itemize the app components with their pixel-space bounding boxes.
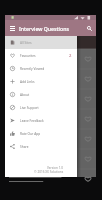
staticText: Leave Feedback (20, 119, 44, 123)
button[interactable]: Search (82, 21, 96, 35)
staticText: About (20, 93, 30, 97)
button[interactable]: Live Support (5, 101, 77, 114)
button[interactable]: All Sites (5, 36, 77, 49)
staticText: Share (20, 145, 29, 149)
button[interactable]: Recently Viewed (5, 62, 77, 75)
staticText: Interview Questions (19, 25, 69, 32)
staticText: Version 1.0 (47, 166, 64, 170)
staticText: Live Support (20, 106, 39, 110)
staticText: 2 (69, 53, 72, 59)
staticText: Rate Our App (20, 132, 41, 136)
staticText: Add Links (20, 80, 35, 84)
button[interactable]: Leave Feedback (5, 114, 77, 127)
button[interactable]: Favourites (5, 49, 77, 62)
button[interactable]: Add Links (5, 75, 77, 88)
staticText: Recently Viewed (20, 67, 45, 71)
button[interactable]: Share (5, 140, 77, 153)
button[interactable]: Open navigation drawer (5, 21, 19, 35)
staticText: © 2016 XX Solutions (34, 170, 64, 174)
button[interactable]: About (5, 88, 77, 101)
staticText: All Sites (20, 41, 32, 45)
button[interactable]: Rate Our App (5, 127, 77, 140)
staticText: Favourites (20, 54, 36, 58)
